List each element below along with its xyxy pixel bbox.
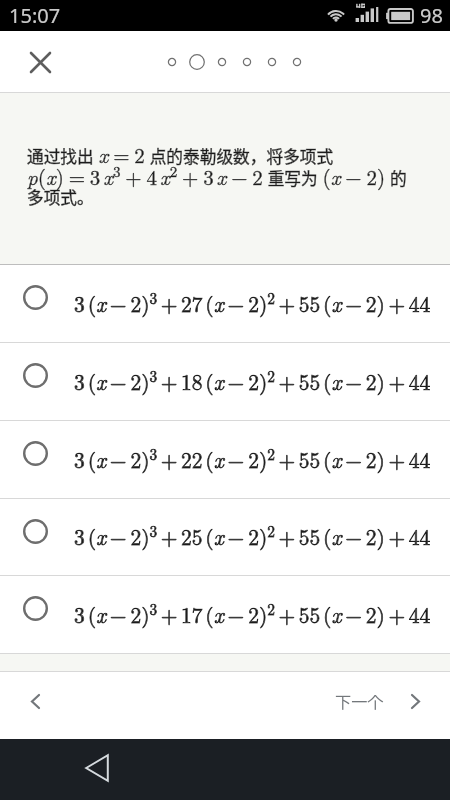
button[interactable]: Previous question (12, 678, 58, 724)
button[interactable]: Close (18, 40, 62, 84)
staticText: 多项式。 (27, 185, 94, 209)
button[interactable]: 3 (x − 2)3 + 27 (x − 2)2 + 55 (x − 2) + … (0, 265, 450, 342)
staticText: 15:07 (9, 2, 61, 29)
button[interactable]: 下一个 (335, 689, 423, 712)
staticText: p(x) = 3 x3 + 4 x2 + 3 x − 2 重写为 (x − 2)… (27, 160, 407, 191)
button[interactable]: Back (74, 745, 120, 791)
staticText: p(x) = 3 x3 + 4 x2 + 3 x − 2 重写为 (x − 2)… (27, 160, 407, 191)
staticText: 下一个 (335, 689, 384, 712)
staticText: 3 (x − 2)3 + 27 (x − 2)2 + 55 (x − 2) + … (74, 287, 431, 319)
staticText: 98 (420, 2, 443, 29)
staticText: 3 (x − 2)3 + 27 (x − 2)2 + 55 (x − 2) + … (74, 287, 431, 319)
staticText: 3 (x − 2)3 + 22 (x − 2)2 + 55 (x − 2) + … (74, 443, 431, 475)
staticText: 通过找出 x = 2 点的泰勒级数，将多项式 (27, 139, 334, 169)
button[interactable]: 3 (x − 2)3 + 18 (x − 2)2 + 55 (x − 2) + … (0, 343, 450, 420)
button[interactable]: 3 (x − 2)3 + 17 (x − 2)2 + 55 (x − 2) + … (0, 576, 450, 653)
button[interactable]: 3 (x − 2)3 + 22 (x − 2)2 + 55 (x − 2) + … (0, 421, 450, 498)
button[interactable]: 3 (x − 2)3 + 25 (x − 2)2 + 55 (x − 2) + … (0, 499, 450, 575)
staticText: 3 (x − 2)3 + 25 (x − 2)2 + 55 (x − 2) + … (74, 520, 431, 552)
staticText: 多项式。 (27, 185, 94, 209)
staticText: 通过找出 x = 2 点的泰勒级数，将多项式 (27, 139, 334, 169)
staticText: 3 (x − 2)3 + 22 (x − 2)2 + 55 (x − 2) + … (74, 443, 431, 475)
staticText: 3 (x − 2)3 + 18 (x − 2)2 + 55 (x − 2) + … (74, 365, 431, 397)
staticText: 3 (x − 2)3 + 17 (x − 2)2 + 55 (x − 2) + … (74, 598, 431, 630)
staticText: 3 (x − 2)3 + 17 (x − 2)2 + 55 (x − 2) + … (74, 598, 431, 630)
staticText: 3 (x − 2)3 + 25 (x − 2)2 + 55 (x − 2) + … (74, 520, 431, 552)
staticText: 3 (x − 2)3 + 18 (x − 2)2 + 55 (x − 2) + … (74, 365, 431, 397)
